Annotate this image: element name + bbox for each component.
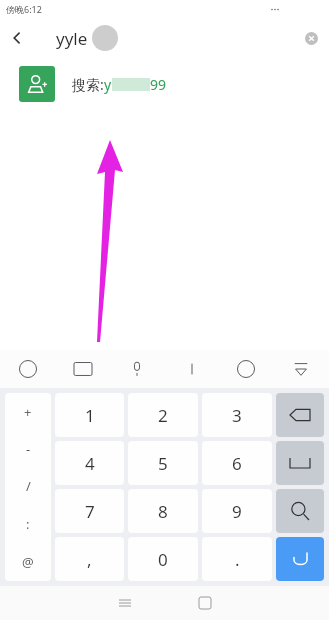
button[interactable]: Backspace <box>276 393 324 437</box>
button[interactable]: : <box>5 505 51 543</box>
button[interactable]: Space <box>276 441 324 485</box>
staticText: 3 <box>232 404 242 427</box>
button[interactable]: + <box>5 393 51 430</box>
button[interactable]: Voice input <box>123 355 151 383</box>
button[interactable]: Keyboard <box>69 355 97 383</box>
staticText: 搜索: <box>72 75 104 94</box>
button[interactable]: Hide keyboard <box>287 355 315 383</box>
button[interactable]: 2 <box>128 393 198 437</box>
button[interactable]: 6 <box>202 441 272 485</box>
button[interactable]: 8 <box>128 489 198 533</box>
button[interactable]: Search <box>276 489 324 533</box>
staticText: , <box>87 548 92 571</box>
button[interactable]: , <box>55 537 124 581</box>
button[interactable]: Back <box>0 21 34 55</box>
staticText: + <box>24 403 32 421</box>
staticText: 1 <box>85 404 95 427</box>
button[interactable]: . <box>202 537 272 581</box>
button[interactable]: @ <box>5 543 51 581</box>
button[interactable]: 3 <box>202 393 272 437</box>
button[interactable]: Enter <box>276 537 324 581</box>
staticText: y <box>104 75 112 94</box>
button[interactable]: 搜索: <box>0 58 329 110</box>
staticText: 傍晚6:12 <box>6 3 42 15</box>
button[interactable]: - <box>5 430 51 467</box>
staticText: yyle 99 <box>56 27 116 50</box>
staticText: 8 <box>158 500 168 523</box>
button[interactable]: Cursor <box>178 355 206 383</box>
button[interactable]: Recents <box>105 586 145 620</box>
button[interactable]: Home <box>185 586 225 620</box>
staticText: 6 <box>232 452 242 475</box>
button[interactable]: 5 <box>128 441 198 485</box>
button[interactable]: / <box>5 467 51 505</box>
button[interactable]: 7 <box>55 489 124 533</box>
staticText: 99 <box>150 75 167 94</box>
staticText: 2 <box>158 404 168 427</box>
button[interactable]: Clear <box>301 28 321 48</box>
button[interactable]: Input method <box>14 355 42 383</box>
button[interactable]: 4 <box>55 441 124 485</box>
staticText: 5 <box>158 452 168 475</box>
staticText: 0 <box>158 548 168 571</box>
staticText: - <box>26 440 31 458</box>
button[interactable]: 1 <box>55 393 124 437</box>
staticText: : <box>26 515 30 533</box>
staticText: 4 <box>85 452 95 475</box>
staticText: . <box>235 548 240 571</box>
staticText: @ <box>22 553 34 571</box>
button[interactable]: 9 <box>202 489 272 533</box>
staticText: 9 <box>232 500 242 523</box>
staticText: 7 <box>85 500 95 523</box>
staticText: / <box>26 477 31 495</box>
button[interactable]: Emoji <box>232 355 260 383</box>
button[interactable]: 0 <box>128 537 198 581</box>
